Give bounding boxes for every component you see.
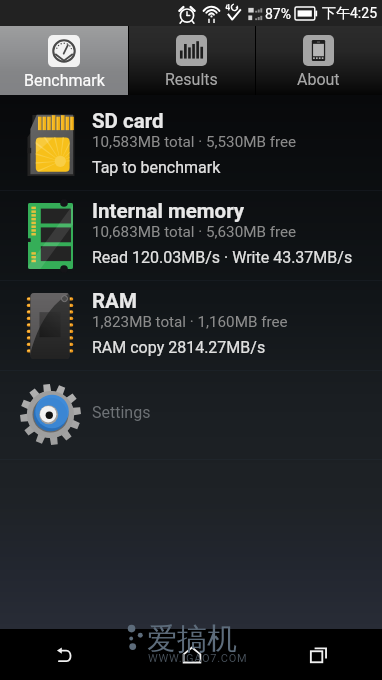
staticText: RAM xyxy=(92,289,137,313)
button[interactable]: Back xyxy=(0,629,128,680)
button[interactable]: Internal memory xyxy=(0,191,382,280)
button[interactable]: Results xyxy=(128,26,255,95)
staticText: RAM copy 2814.27MB/s xyxy=(92,338,266,357)
staticText: 87% xyxy=(265,6,291,22)
staticText: Benchmark xyxy=(24,71,105,90)
staticText: 10,583MB total · 5,530MB free xyxy=(92,133,297,151)
staticText: Internal memory xyxy=(92,199,245,223)
button[interactable]: Home xyxy=(128,629,255,680)
button[interactable]: SD card xyxy=(0,95,382,190)
staticText: Read 120.03MB/s · Write 43.37MB/s xyxy=(92,248,353,267)
button[interactable]: Recent apps xyxy=(255,629,382,680)
button[interactable]: Settings xyxy=(0,371,382,459)
button[interactable]: About xyxy=(255,26,382,95)
staticText: Results xyxy=(165,70,218,89)
staticText: 下午4:25 xyxy=(322,5,377,23)
staticText: WWW.IGAO7.COM xyxy=(148,652,248,665)
staticText: SD card xyxy=(92,109,164,133)
staticText: 爱搞机 xyxy=(147,620,237,658)
staticText: About xyxy=(297,70,340,89)
button[interactable]: RAM xyxy=(0,281,382,370)
staticText: 1,823MB total · 1,160MB free xyxy=(92,313,288,331)
staticText: Tap to benchmark xyxy=(92,158,221,177)
button[interactable]: Benchmark xyxy=(0,26,128,95)
staticText: Settings xyxy=(92,403,151,422)
staticText: 10,683MB total · 5,630MB free xyxy=(92,223,297,241)
